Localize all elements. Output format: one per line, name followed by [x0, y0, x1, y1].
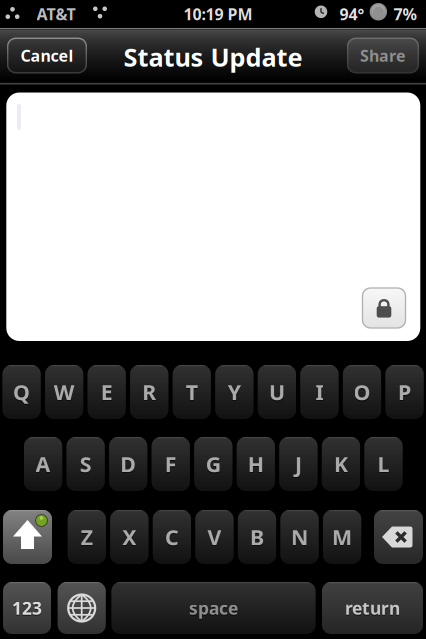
staticText: H	[248, 451, 264, 479]
staticText: D	[120, 451, 136, 479]
button[interactable]: Share	[347, 37, 419, 73]
staticText: N	[291, 523, 308, 551]
staticText: V	[207, 524, 221, 552]
staticText: A	[36, 451, 51, 479]
staticText: P	[398, 379, 411, 407]
staticText: N	[291, 524, 308, 552]
button[interactable]: Q	[2, 365, 41, 419]
staticText: G	[206, 450, 221, 478]
button[interactable]: R	[130, 365, 168, 419]
staticText: Z	[81, 524, 93, 552]
button[interactable]: W	[45, 365, 83, 419]
staticText: 7%	[393, 3, 416, 25]
staticText: S	[80, 451, 92, 479]
staticText: G	[206, 451, 221, 479]
staticText: return	[345, 598, 400, 621]
button[interactable]: A	[24, 437, 62, 491]
button[interactable]: V	[195, 510, 233, 564]
button[interactable]: space	[111, 582, 315, 634]
staticText: O	[353, 378, 370, 406]
staticText: K	[334, 451, 348, 479]
staticText: M	[332, 524, 352, 552]
staticText: V	[207, 523, 221, 551]
button[interactable]: N	[280, 510, 319, 564]
button[interactable]: Lock	[362, 288, 405, 328]
staticText: I	[315, 379, 323, 407]
staticText: E	[101, 379, 113, 407]
staticText: F	[165, 450, 177, 478]
button[interactable]: Z	[68, 510, 106, 564]
staticText: Cancel	[20, 45, 73, 66]
staticText: P	[398, 378, 411, 406]
button[interactable]: K	[322, 437, 360, 491]
staticText: M	[332, 523, 352, 551]
staticText: D	[120, 450, 136, 478]
staticText: L	[377, 451, 389, 479]
staticText: X	[122, 524, 136, 552]
staticText: X	[122, 523, 136, 551]
staticText: R	[142, 378, 156, 406]
staticText: O	[353, 379, 370, 407]
staticText: W	[54, 378, 75, 406]
staticText: C	[165, 523, 179, 551]
staticText: Q	[13, 379, 30, 407]
staticText: Share	[360, 45, 406, 66]
button[interactable]: U	[258, 365, 296, 419]
staticText: 94°	[339, 3, 364, 25]
staticText: A	[36, 450, 51, 478]
staticText: 123	[12, 596, 42, 619]
button[interactable]: 123	[3, 582, 51, 634]
staticText: Y	[228, 378, 241, 406]
staticText: J	[295, 450, 302, 478]
button[interactable]: T	[173, 365, 211, 419]
button[interactable]: E	[88, 365, 126, 419]
button[interactable]: B	[238, 510, 276, 564]
staticText: T	[186, 379, 198, 407]
button[interactable]: D	[109, 437, 147, 491]
staticText: E	[101, 378, 113, 406]
staticText: L	[377, 450, 389, 478]
button[interactable]: L	[364, 437, 403, 491]
button[interactable]: Shift	[3, 510, 52, 564]
staticText: H	[248, 450, 264, 478]
button[interactable]: S	[66, 437, 105, 491]
staticText: B	[250, 523, 264, 551]
staticText: C	[165, 524, 179, 552]
staticText: J	[295, 451, 302, 479]
staticText: U	[269, 378, 285, 406]
button[interactable]: O	[343, 365, 381, 419]
staticText: K	[334, 450, 348, 478]
staticText: S	[80, 450, 92, 478]
button[interactable]: return	[322, 582, 423, 634]
staticText: T	[186, 378, 198, 406]
button[interactable]: F	[152, 437, 190, 491]
button[interactable]: C	[153, 510, 191, 564]
staticText: Z	[81, 523, 93, 551]
staticText: space	[189, 596, 238, 619]
staticText: 10:19 PM	[183, 3, 252, 25]
staticText: R	[142, 379, 156, 407]
staticText: W	[54, 379, 75, 407]
button[interactable]: Next keyboard	[58, 582, 106, 634]
button[interactable]: J	[279, 437, 317, 491]
staticText: Y	[228, 379, 241, 407]
staticText: return	[345, 596, 400, 619]
staticText: Status Update	[123, 40, 302, 74]
button[interactable]: I	[300, 365, 338, 419]
button[interactable]: Delete	[374, 510, 423, 564]
staticText: AT&T	[36, 3, 75, 25]
button[interactable]: X	[110, 510, 148, 564]
staticText: B	[250, 524, 264, 552]
staticText: I	[315, 378, 323, 406]
button[interactable]: G	[194, 437, 232, 491]
button[interactable]: Cancel	[7, 37, 87, 73]
staticText: space	[189, 598, 238, 621]
staticText: F	[165, 451, 177, 479]
staticText: Q	[13, 378, 30, 406]
button[interactable]: H	[237, 437, 275, 491]
staticText: U	[269, 379, 285, 407]
staticText: 123	[12, 598, 42, 621]
button[interactable]: P	[385, 365, 424, 419]
button[interactable]: M	[323, 510, 361, 564]
button[interactable]: Y	[215, 365, 253, 419]
